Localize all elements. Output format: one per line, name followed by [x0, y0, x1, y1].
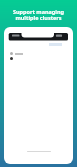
- staticText: Support managing multiple clusters: [0, 8, 77, 22]
